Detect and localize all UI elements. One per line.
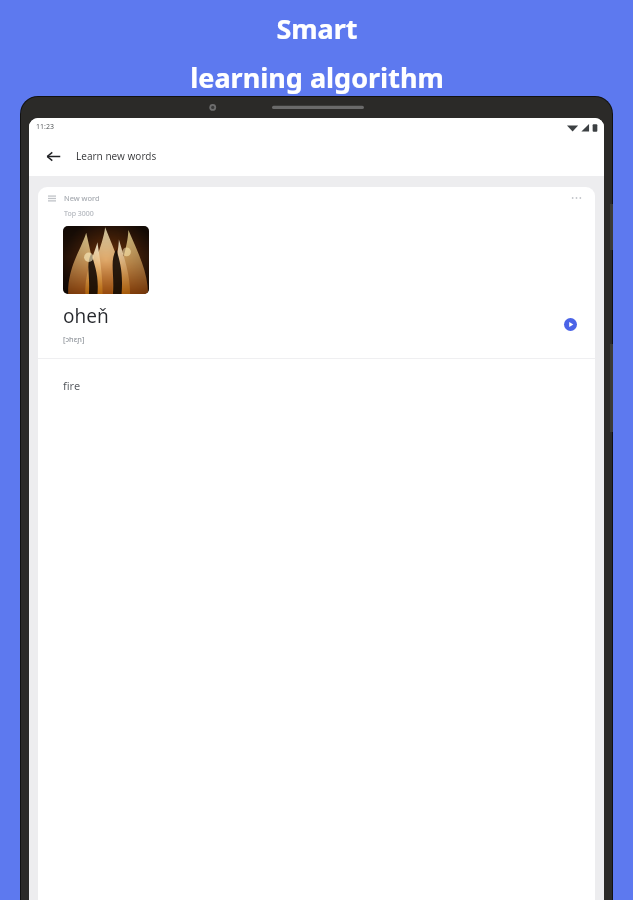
staticText: fire [63, 378, 81, 393]
button[interactable]: Play pronunciation [559, 313, 581, 335]
button[interactable]: Back [39, 142, 67, 170]
staticText: oheň [63, 303, 109, 329]
staticText: learning algorithm [190, 59, 444, 96]
staticText: Top 3000 [64, 209, 94, 219]
button[interactable]: More options [567, 189, 585, 207]
staticText: 11:23 [36, 122, 54, 132]
staticText: [ɔhɛɲ] [63, 334, 85, 344]
staticText: Smart [276, 10, 358, 47]
staticText: New word [64, 193, 100, 203]
staticText: Learn new words [76, 149, 157, 163]
